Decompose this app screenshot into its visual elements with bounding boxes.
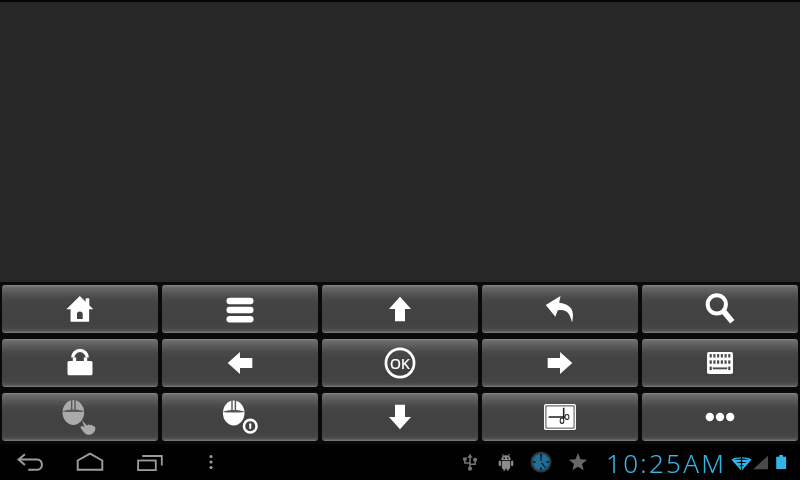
button[interactable]: Menu [182, 444, 240, 480]
button[interactable]: Mouse wheel [162, 393, 318, 441]
button[interactable]: Recents [120, 444, 182, 480]
button[interactable]: Right [482, 339, 638, 387]
button[interactable]: Left [162, 339, 318, 387]
button[interactable]: OK [322, 339, 478, 387]
button[interactable]: Lock [2, 339, 158, 387]
button[interactable]: Menu [162, 285, 318, 333]
button[interactable]: More options [642, 393, 798, 441]
button[interactable]: Back [0, 444, 60, 480]
button[interactable]: Down [322, 393, 478, 441]
staticText: 10:25AM [606, 445, 727, 480]
button[interactable]: Mouse drag [2, 393, 158, 441]
button[interactable]: Home [2, 285, 158, 333]
button[interactable]: Keyboard [642, 339, 798, 387]
staticText: OK [390, 354, 410, 373]
button[interactable]: Home [60, 444, 120, 480]
button[interactable]: Search [642, 285, 798, 333]
button[interactable]: Up [322, 285, 478, 333]
button[interactable]: Screenshot [482, 393, 638, 441]
button[interactable]: Back [482, 285, 638, 333]
